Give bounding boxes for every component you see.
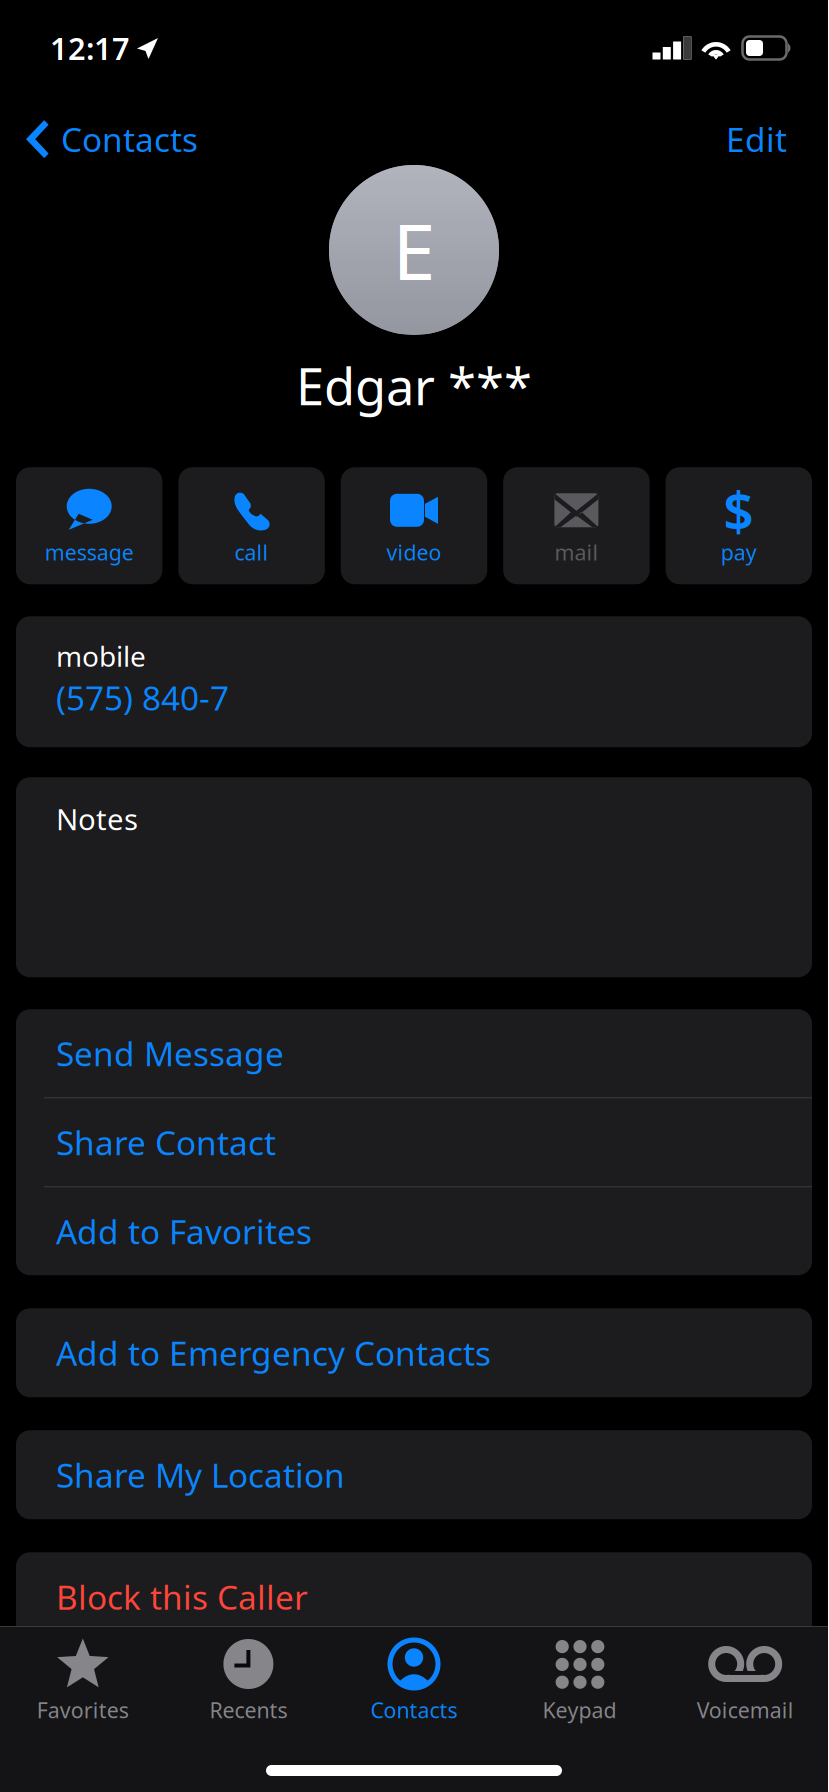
button[interactable]: Notes [16, 777, 812, 977]
button[interactable]: Add to Emergency Contacts [16, 1308, 812, 1397]
staticText: mobile [56, 637, 146, 674]
staticText: 12:17 [50, 28, 130, 68]
staticText: Block this Caller [56, 1575, 308, 1619]
button[interactable]: Favorites [0, 1637, 166, 1721]
staticText: Edit [726, 117, 787, 161]
staticText: (575) 840-7 [56, 675, 229, 720]
button[interactable]: mobile [16, 616, 812, 747]
staticText: Notes [56, 799, 138, 838]
button[interactable]: Edit [696, 94, 828, 165]
staticText: E [392, 199, 435, 301]
button[interactable]: Keypad [497, 1637, 662, 1721]
button[interactable]: Contacts [331, 1637, 497, 1721]
staticText: message [45, 538, 134, 566]
button[interactable]: Block this Caller [16, 1552, 812, 1641]
staticText: Share My Location [56, 1453, 345, 1497]
button[interactable]: Add to Favorites [16, 1187, 812, 1275]
staticText: Share Contact [56, 1120, 276, 1164]
staticText: Voicemail [697, 1696, 794, 1724]
button[interactable]: video [341, 467, 487, 584]
staticText: Send Message [56, 1031, 284, 1075]
staticText: Recents [209, 1696, 287, 1724]
staticText: mail [554, 538, 598, 566]
button[interactable]: mail [503, 467, 650, 584]
staticText: $ [723, 475, 754, 546]
button[interactable]: Back to Contacts [0, 94, 214, 165]
button[interactable]: $ [666, 467, 812, 584]
staticText: call [235, 538, 269, 566]
staticText: Favorites [37, 1696, 129, 1724]
staticText: pay [721, 538, 757, 566]
staticText: Keypad [543, 1696, 617, 1724]
button[interactable]: Voicemail [662, 1637, 828, 1721]
button[interactable]: Share My Location [16, 1430, 812, 1519]
button[interactable]: Send Message [16, 1009, 812, 1097]
button[interactable]: call [178, 467, 325, 584]
staticText: Add to Emergency Contacts [56, 1331, 491, 1375]
staticText: Contacts [370, 1696, 457, 1724]
staticText: video [386, 538, 441, 566]
button[interactable]: message [16, 467, 162, 584]
button[interactable]: Share Contact [16, 1098, 812, 1186]
button[interactable]: Recents [166, 1637, 331, 1721]
staticText: Add to Favorites [56, 1209, 312, 1253]
staticText: Contacts [61, 117, 198, 161]
staticText: Edgar *** [296, 352, 532, 419]
